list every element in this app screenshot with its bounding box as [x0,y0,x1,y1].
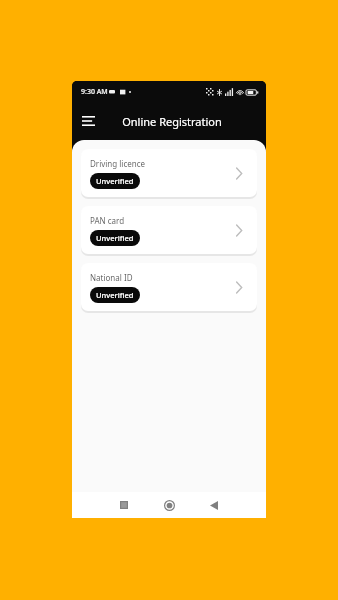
staticText: Driving licence [90,158,146,169]
button[interactable]: Home [158,494,180,516]
other: Open Driving licence details [230,164,248,182]
button[interactable]: National ID [81,263,257,311]
staticText: Unverified [96,176,134,186]
staticText: National ID [90,272,133,283]
button[interactable]: Driving licence [81,149,257,197]
button[interactable]: PAN card [81,206,257,254]
button[interactable]: Open navigation menu [77,110,99,132]
staticText: Unverified [96,233,134,243]
other: Open National ID details [230,278,248,296]
button[interactable]: Recent apps [113,494,135,516]
staticText: PAN card [90,215,125,226]
staticText: Online Registration [122,114,222,129]
staticText: Unverified [96,290,134,300]
other: Open PAN card details [230,221,248,239]
button[interactable]: Back [203,494,225,516]
staticText: 9:30 AM [81,87,108,97]
